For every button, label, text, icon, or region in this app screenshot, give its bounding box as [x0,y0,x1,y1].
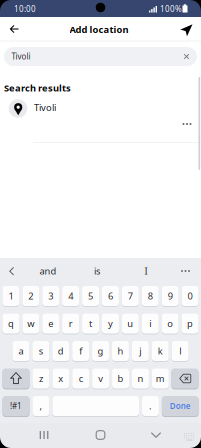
staticText: r [69,317,73,330]
staticText: b [117,372,123,385]
staticText: is [94,265,100,277]
staticText: k [158,345,163,357]
staticText: l [179,345,181,357]
staticText: 5 [88,290,93,302]
staticText: i [149,317,151,330]
staticText: Search results [4,82,71,94]
staticText: g [97,345,103,357]
staticText: o [167,317,173,330]
staticText: 3 [48,290,53,302]
staticText: f [79,345,82,357]
staticText: Tivoli [34,101,56,114]
staticText: , [39,400,42,412]
staticText: 1 [8,290,13,302]
staticText: q [8,317,14,330]
staticText: x [58,372,63,385]
staticText: w [27,317,34,330]
staticText: z [39,372,43,385]
staticText: v [98,372,103,385]
staticText: 7 [128,290,133,302]
staticText: 6 [108,290,113,302]
staticText: p [187,317,193,330]
staticText: 10:00 [14,4,36,14]
staticText: a [18,345,23,357]
staticText: d [58,345,64,357]
staticText: Done [170,401,191,411]
staticText: 4 [68,290,73,302]
staticText: n [137,372,143,385]
staticText: Add location [69,23,128,36]
staticText: s [39,345,43,357]
staticText: 9 [168,290,173,302]
staticText: t [89,317,92,330]
staticText: 2 [28,290,33,302]
staticText: !#1 [10,401,22,411]
staticText: m [156,372,165,385]
staticText: u [127,317,133,330]
staticText: and [39,265,56,277]
staticText: I [144,265,147,277]
staticText: 8 [148,290,153,302]
staticText: 100% [160,4,182,14]
staticText: j [139,345,141,357]
staticText: c [79,372,83,385]
staticText: 0 [187,290,192,302]
staticText: h [117,345,123,357]
staticText: . [149,400,152,412]
staticText: e [48,317,53,330]
staticText: Tivoli [11,51,30,62]
staticText: y [108,317,113,330]
